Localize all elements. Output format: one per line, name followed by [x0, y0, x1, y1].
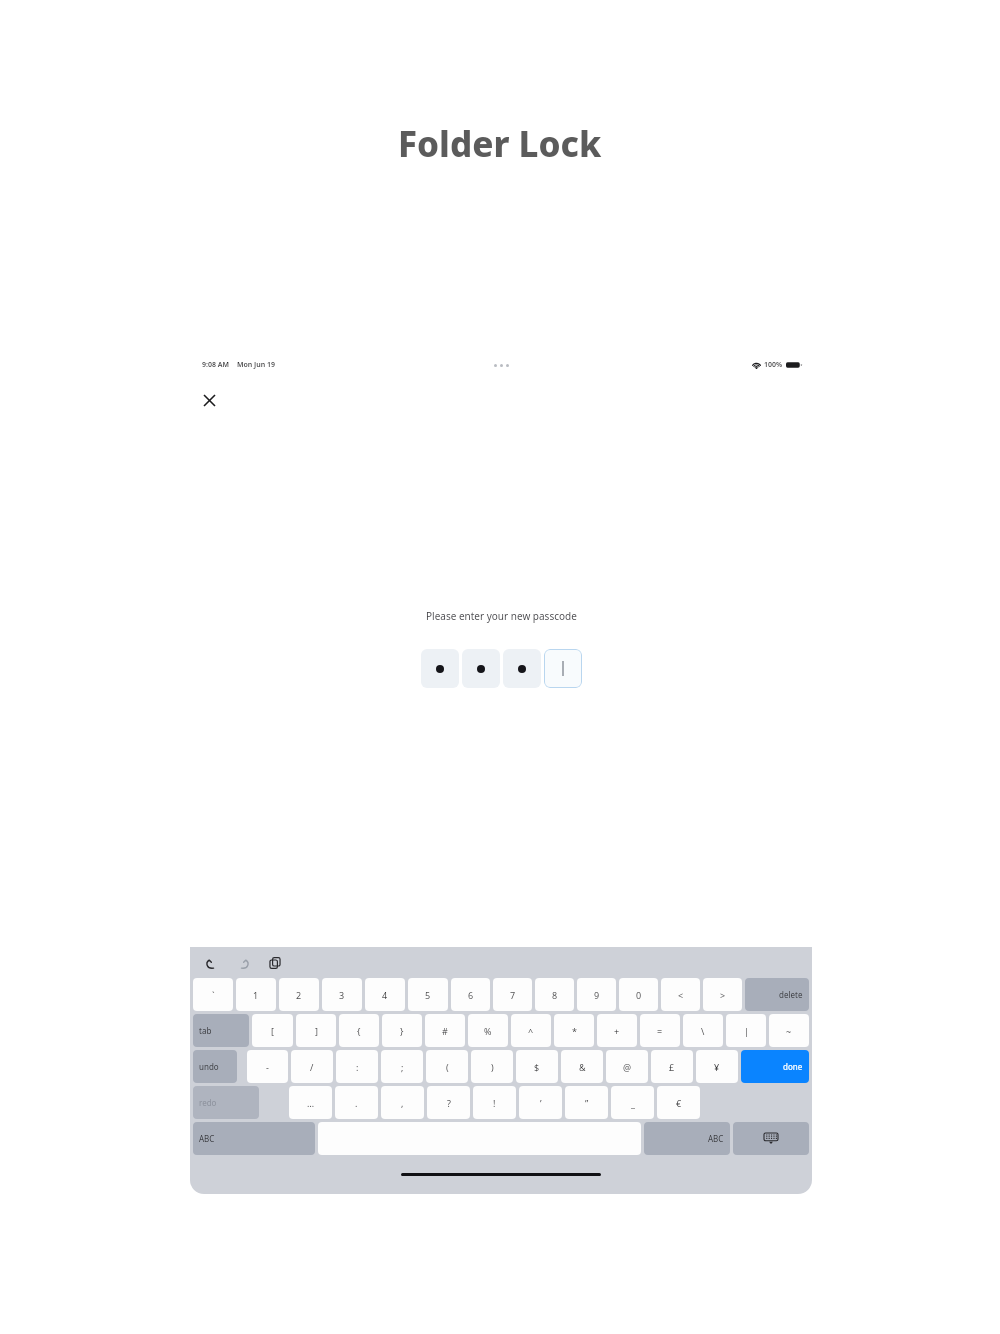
button[interactable]: | [726, 1014, 766, 1047]
staticText: | [744, 1025, 749, 1037]
button[interactable]: - [247, 1050, 288, 1083]
button[interactable]: ) [471, 1050, 513, 1083]
button[interactable]: + [597, 1014, 637, 1047]
staticText: [ [271, 1025, 274, 1037]
button[interactable]: / [291, 1050, 333, 1083]
button[interactable]: ` [193, 978, 233, 1011]
staticText: £ [669, 1061, 675, 1073]
staticText: 6 [468, 989, 474, 1001]
staticText: { [357, 1025, 361, 1037]
staticText: ^ [528, 1025, 534, 1037]
staticText: 9:08 AM [202, 360, 229, 370]
staticText: # [442, 1025, 448, 1037]
staticText: \ [701, 1025, 705, 1037]
button[interactable]: & [561, 1050, 603, 1083]
button[interactable]: * [554, 1014, 594, 1047]
button[interactable]: ! [473, 1086, 516, 1119]
button[interactable]: 3 [322, 978, 362, 1011]
button[interactable]: $ [516, 1050, 558, 1083]
staticText: 9 [594, 989, 600, 1001]
button[interactable]: delete [745, 978, 809, 1011]
staticText: @ [623, 1061, 632, 1073]
staticText: _ [631, 1097, 635, 1109]
button[interactable]: ( [426, 1050, 468, 1083]
button[interactable]: _ [611, 1086, 654, 1119]
button[interactable]: # [425, 1014, 465, 1047]
button[interactable]: Passcode digit filled [421, 649, 459, 688]
staticText: > [720, 989, 726, 1001]
staticText: . [355, 1097, 358, 1109]
staticText: 8 [552, 989, 558, 1001]
button[interactable]: = [640, 1014, 680, 1047]
button[interactable]: } [382, 1014, 422, 1047]
staticText: ~ [786, 1025, 792, 1037]
staticText: delete [779, 989, 803, 1000]
button[interactable]: 6 [451, 978, 490, 1011]
button[interactable]: . [335, 1086, 378, 1119]
button[interactable]: ABC [193, 1122, 315, 1155]
staticText: : [356, 1061, 359, 1073]
staticText: 5 [425, 989, 431, 1001]
button[interactable]: 2 [279, 978, 319, 1011]
button[interactable]: Passcode digit filled [503, 649, 541, 688]
button[interactable]: 1 [236, 978, 276, 1011]
button[interactable]: 0 [619, 978, 658, 1011]
staticText: … [307, 1097, 315, 1109]
button[interactable]: done [741, 1050, 809, 1083]
staticText: ` [212, 989, 215, 1001]
button[interactable]: ] [296, 1014, 336, 1047]
button[interactable]: 5 [408, 978, 448, 1011]
button[interactable]: @ [606, 1050, 648, 1083]
button[interactable]: ’ [519, 1086, 562, 1119]
button[interactable]: redo [193, 1086, 259, 1119]
button[interactable]: ? [427, 1086, 470, 1119]
staticText: Folder Lock [398, 120, 602, 168]
staticText: $ [534, 1061, 540, 1073]
button[interactable]: undo [193, 1050, 237, 1083]
button[interactable]: tab [193, 1014, 249, 1047]
staticText: Please enter your new passcode [426, 609, 577, 623]
staticText: * [572, 1025, 577, 1037]
button[interactable]: € [657, 1086, 700, 1119]
staticText: € [676, 1097, 682, 1109]
button[interactable]: [ [252, 1014, 293, 1047]
button[interactable]: % [468, 1014, 508, 1047]
staticText: ’ [540, 1097, 542, 1109]
button[interactable]: ” [565, 1086, 608, 1119]
button[interactable]: Close [196, 387, 222, 413]
button[interactable]: \ [683, 1014, 723, 1047]
staticText: 4 [382, 989, 388, 1001]
button[interactable]: ¥ [696, 1050, 738, 1083]
staticText: undo [199, 1061, 219, 1072]
button[interactable]: { [339, 1014, 379, 1047]
button[interactable]: … [289, 1086, 332, 1119]
button[interactable]: Paste [266, 954, 284, 972]
button[interactable]: ^ [511, 1014, 551, 1047]
button[interactable]: , [381, 1086, 424, 1119]
button[interactable]: 7 [493, 978, 532, 1011]
staticText: < [678, 989, 684, 1001]
staticText: + [614, 1025, 620, 1037]
button[interactable]: > [703, 978, 742, 1011]
button[interactable]: 4 [365, 978, 405, 1011]
button[interactable]: < [661, 978, 700, 1011]
staticText: % [484, 1025, 492, 1037]
staticText: & [579, 1061, 586, 1073]
staticText: - [266, 1061, 269, 1073]
staticText: 2 [296, 989, 302, 1001]
button[interactable]: Passcode digit filled [462, 649, 500, 688]
button[interactable]: ABC [644, 1122, 730, 1155]
staticText: ] [315, 1025, 318, 1037]
button[interactable]: : [336, 1050, 378, 1083]
button[interactable]: ~ [769, 1014, 809, 1047]
button[interactable]: £ [651, 1050, 693, 1083]
button[interactable]: Hide keyboard [733, 1122, 809, 1155]
button[interactable]: 8 [535, 978, 574, 1011]
button[interactable]: ; [381, 1050, 423, 1083]
staticText: ABC [708, 1133, 724, 1144]
button[interactable]: 9 [577, 978, 616, 1011]
button[interactable]: Redo [234, 954, 252, 972]
button[interactable]: Undo [202, 954, 220, 972]
button[interactable]: Passcode digit empty [544, 649, 582, 688]
